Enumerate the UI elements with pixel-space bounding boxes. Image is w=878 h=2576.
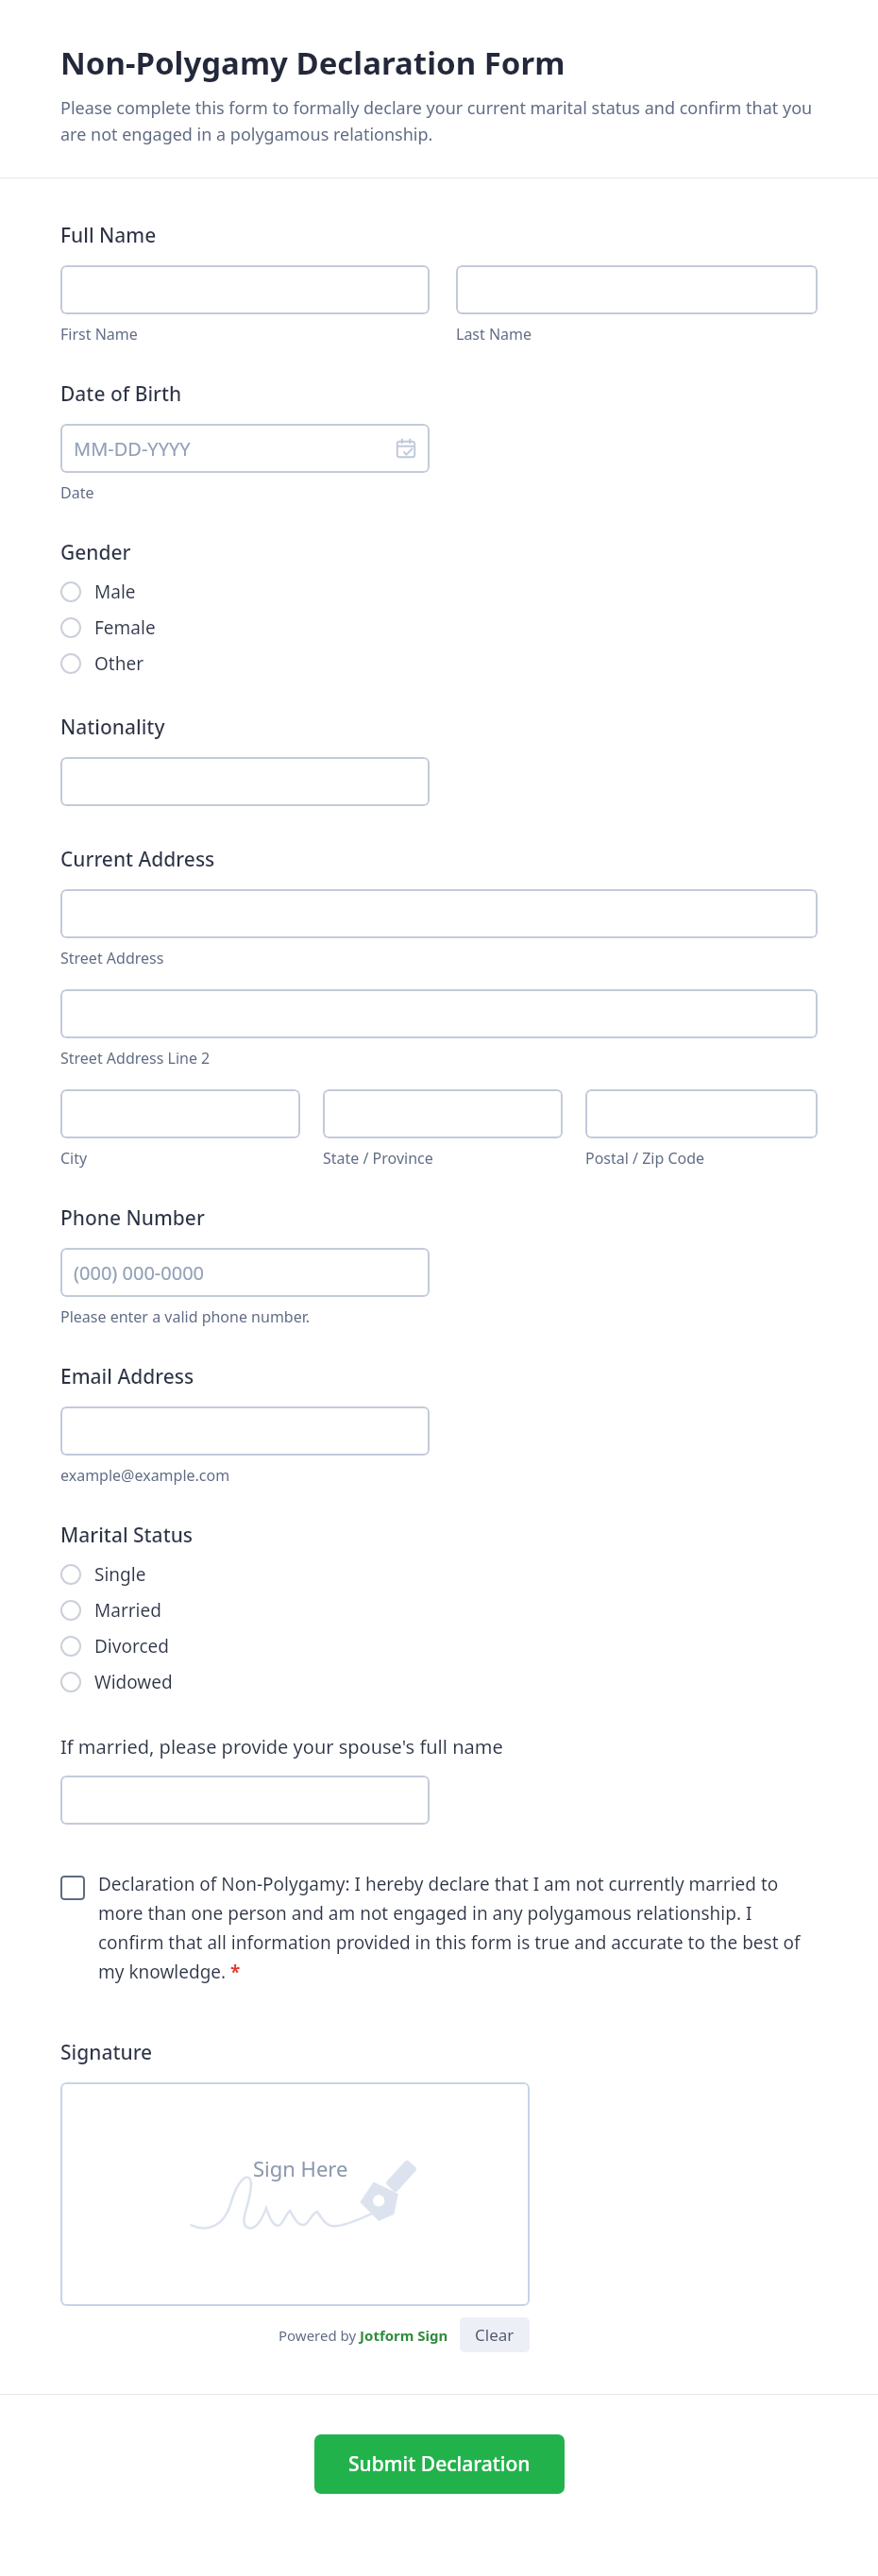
staticText: Powered by Jotform Sign (279, 2326, 448, 2345)
staticText: MM-DD-YYYY (74, 436, 396, 462)
button[interactable] (60, 265, 430, 314)
staticText: Single (94, 1562, 146, 1587)
staticText: Date (60, 482, 94, 503)
button[interactable]: (000) 000-0000 (60, 1248, 430, 1297)
staticText: Signature (60, 2039, 153, 2066)
staticText: Please enter a valid phone number. (60, 1306, 311, 1327)
staticText: example@example.com (60, 1465, 230, 1486)
staticText: Street Address (60, 948, 164, 968)
staticText: Full Name (60, 222, 157, 249)
button[interactable] (60, 989, 818, 1038)
button[interactable]: MM-DD-YYYY (60, 424, 430, 473)
staticText: Last Name (456, 324, 532, 345)
staticText: Please complete this form to formally de… (60, 96, 818, 145)
button[interactable]: Married (60, 1592, 818, 1628)
button[interactable]: Male (60, 574, 818, 610)
staticText: State / Province (323, 1148, 433, 1169)
button[interactable] (323, 1089, 563, 1138)
button[interactable]: Clear (460, 2317, 530, 2352)
button[interactable]: Declaration of Non-Polygamy: I hereby de… (60, 1872, 818, 1984)
staticText: Postal / Zip Code (585, 1148, 705, 1169)
staticText: Married (94, 1598, 161, 1623)
staticText: Non-Polygamy Declaration Form (60, 42, 566, 84)
button[interactable] (60, 1406, 430, 1456)
staticText: Clear (475, 2324, 515, 2346)
button[interactable] (456, 265, 818, 314)
staticText: Marital Status (60, 1522, 194, 1549)
staticText: Street Address Line 2 (60, 1048, 211, 1069)
button[interactable]: Signature pad, sign here (60, 2082, 530, 2306)
button[interactable] (60, 757, 430, 806)
staticText: Email Address (60, 1363, 194, 1390)
staticText: If married, please provide your spouse's… (60, 1734, 503, 1759)
staticText: Nationality (60, 714, 165, 741)
staticText: Date of Birth (60, 380, 182, 408)
staticText: Widowed (94, 1670, 173, 1694)
staticText: Phone Number (60, 1204, 205, 1232)
staticText: Female (94, 615, 156, 640)
button[interactable]: Single (60, 1557, 818, 1592)
staticText: Submit Declaration (348, 2450, 531, 2478)
button[interactable]: Other (60, 646, 818, 682)
staticText: (000) 000-0000 (74, 1260, 416, 1286)
button[interactable]: Submit Declaration (314, 2434, 565, 2494)
button[interactable] (585, 1089, 818, 1138)
staticText: Sign Here (253, 2154, 348, 2182)
button[interactable] (60, 1089, 300, 1138)
staticText: Gender (60, 539, 131, 566)
staticText: Divorced (94, 1634, 169, 1658)
staticText: Male (94, 580, 136, 604)
staticText: Declaration of Non-Polygamy: I hereby de… (98, 1872, 818, 1984)
staticText: First Name (60, 324, 138, 345)
button[interactable] (60, 1776, 430, 1825)
staticText: City (60, 1148, 88, 1169)
button[interactable] (60, 889, 818, 938)
staticText: Other (94, 651, 144, 676)
button[interactable]: Widowed (60, 1664, 818, 1700)
button[interactable]: Divorced (60, 1628, 818, 1664)
button[interactable]: Female (60, 610, 818, 646)
staticText: Current Address (60, 846, 215, 873)
